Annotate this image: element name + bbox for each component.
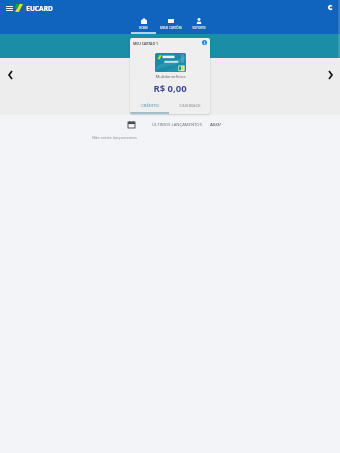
button[interactable]: Informações [202, 40, 207, 45]
staticText: Não existe lançamentos [92, 135, 137, 140]
staticText: CASHBACK [179, 103, 201, 109]
staticText: HOME [139, 26, 148, 30]
staticText: R$ 0,00 [153, 82, 187, 95]
staticText: Multibenefícios [155, 74, 186, 80]
button[interactable]: CASHBACK [170, 100, 210, 114]
button[interactable]: SUPORTE [186, 18, 211, 32]
button[interactable]: MEUS CARTÕES [156, 18, 186, 32]
staticText: SUPORTE [192, 26, 206, 30]
button[interactable]: Anterior [6, 70, 15, 79]
staticText: EUCARD [26, 4, 53, 13]
staticText: MEU CARTÃO 1 [133, 41, 158, 46]
staticText: MEUS CARTÕES [160, 26, 182, 30]
staticText: ÚLTIMOS LANÇAMENTOS [152, 122, 202, 128]
staticText: CRÉDITO [141, 103, 159, 109]
button[interactable]: Menu [4, 4, 14, 12]
staticText: AGO/ [210, 122, 221, 128]
staticText: i [204, 41, 205, 45]
button[interactable]: HOME [131, 18, 156, 34]
button[interactable]: Próximo [326, 70, 335, 79]
button[interactable]: Sair [326, 3, 335, 12]
button[interactable]: CRÉDITO [130, 100, 170, 114]
